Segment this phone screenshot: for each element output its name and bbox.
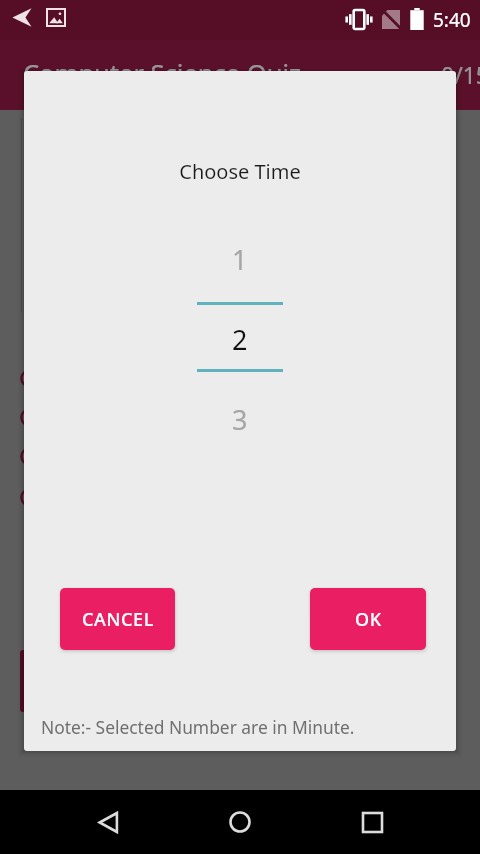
staticText: OK — [355, 607, 382, 632]
staticText: 5:40 — [433, 7, 471, 33]
staticText: 2 — [232, 321, 248, 358]
button[interactable] — [20, 650, 132, 712]
button[interactable]: 3 — [24, 399, 456, 439]
button[interactable] — [20, 487, 480, 507]
staticText: CANCEL — [82, 607, 154, 632]
button[interactable] — [20, 368, 480, 388]
button[interactable]: 2 — [24, 319, 456, 359]
staticText: 0/15 — [441, 59, 480, 90]
other: Back — [12, 7, 33, 28]
staticText: Choose Time — [24, 158, 456, 185]
button[interactable] — [20, 446, 480, 466]
button[interactable]: Back — [84, 798, 132, 846]
staticText: 3 — [232, 401, 248, 438]
button[interactable]: Home — [216, 798, 264, 846]
button[interactable]: 1 — [24, 239, 456, 279]
button[interactable] — [20, 407, 480, 427]
staticText: 1 — [232, 241, 248, 278]
staticText: Note:- Selected Number are in Minute. — [41, 715, 355, 739]
button[interactable]: CANCEL — [60, 588, 175, 650]
button[interactable]: Recent apps — [348, 798, 396, 846]
staticText: Computer Science Quiz — [23, 56, 302, 91]
button[interactable]: OK — [310, 588, 426, 650]
